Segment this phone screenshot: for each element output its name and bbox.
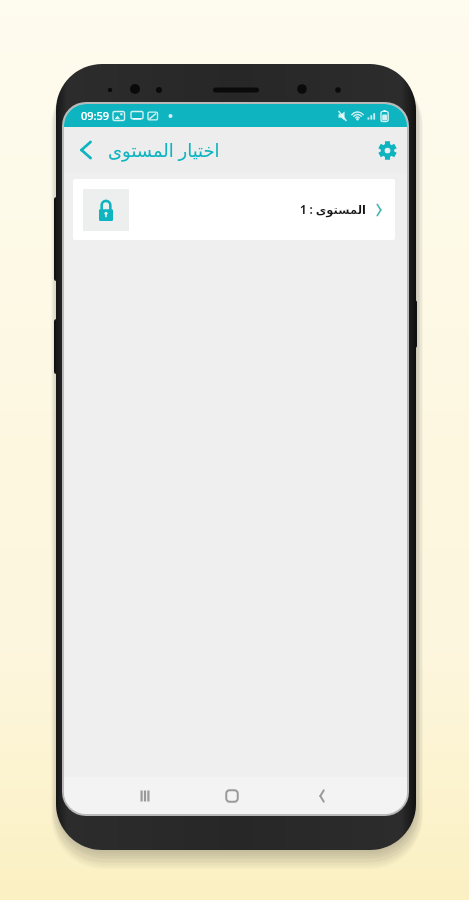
staticText: المستوى : 1 <box>300 202 366 218</box>
button[interactable]: Back <box>302 777 342 814</box>
staticText: اختيار المستوى <box>108 138 220 163</box>
button[interactable]: Back <box>71 135 101 165</box>
button[interactable]: المستوى : 1 <box>73 179 395 240</box>
button[interactable]: Settings <box>371 134 403 166</box>
staticText: 09:59 <box>81 108 110 123</box>
button[interactable]: Recent apps <box>125 777 165 814</box>
button[interactable]: Home <box>212 777 252 814</box>
